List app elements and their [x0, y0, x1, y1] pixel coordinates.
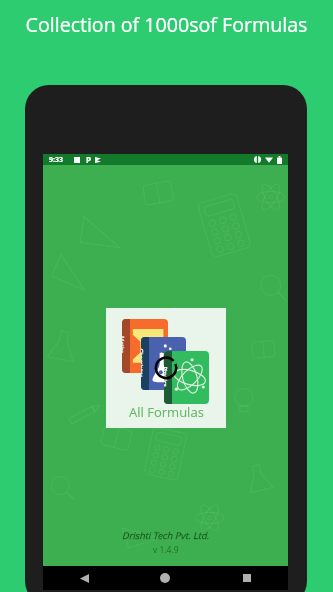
staticText: Drishti Tech Pvt. Ltd.	[122, 529, 210, 542]
button[interactable]: Home	[153, 566, 177, 590]
staticText: 9:33	[49, 155, 63, 165]
button[interactable]: Back	[72, 566, 96, 590]
staticText: v 1.4.9	[153, 544, 179, 556]
staticText: Chemistry	[141, 348, 144, 376]
staticText: P	[86, 154, 91, 165]
staticText: Physics	[164, 366, 168, 387]
staticText: Maths	[122, 336, 126, 354]
staticText: Collection of 1000sof Formulas	[0, 11, 333, 38]
button[interactable]: Recents	[235, 566, 259, 590]
staticText: All Formulas	[129, 403, 204, 421]
